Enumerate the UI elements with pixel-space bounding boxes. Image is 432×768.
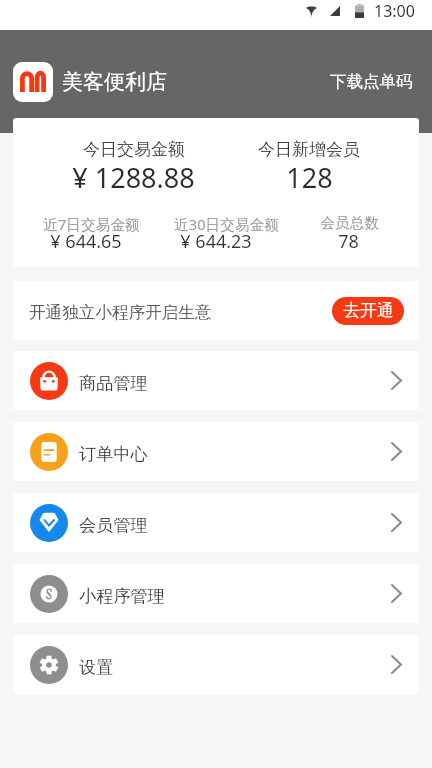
button[interactable]: 订单中心: [13, 422, 419, 481]
staticText: 128: [286, 159, 333, 196]
staticText: 小程序管理: [79, 585, 165, 607]
staticText: ¥ 644.65: [50, 229, 122, 254]
staticText: 商品管理: [79, 372, 148, 394]
staticText: 设置: [79, 656, 114, 678]
staticText: ¥ 644.23: [180, 229, 252, 254]
staticText: 下载点单码: [330, 71, 413, 92]
button[interactable]: 商品管理: [13, 351, 419, 410]
staticText: 今日新增会员: [258, 139, 360, 160]
staticText: 近7日交易金额: [43, 214, 140, 234]
button[interactable]: 会员管理: [13, 493, 419, 552]
button[interactable]: 小程序管理: [13, 564, 419, 623]
button[interactable]: 去开通: [332, 297, 404, 325]
staticText: 13:00: [374, 0, 415, 22]
staticText: 开通独立小程序开启生意: [29, 302, 212, 323]
staticText: 78: [338, 229, 359, 254]
staticText: 近30日交易金额: [174, 214, 279, 234]
button[interactable]: 下载点单码: [330, 65, 413, 98]
staticText: ¥ 1288.88: [72, 159, 195, 196]
button[interactable]: 设置: [13, 635, 419, 694]
staticText: 会员总数: [320, 214, 379, 233]
button[interactable]: 开通独立小程序开启生意: [13, 281, 419, 340]
staticText: 订单中心: [79, 443, 148, 465]
staticText: 美客便利店: [62, 69, 167, 95]
staticText: 去开通: [343, 300, 394, 321]
staticText: 会员管理: [79, 514, 148, 536]
staticText: 今日交易金额: [83, 139, 185, 160]
